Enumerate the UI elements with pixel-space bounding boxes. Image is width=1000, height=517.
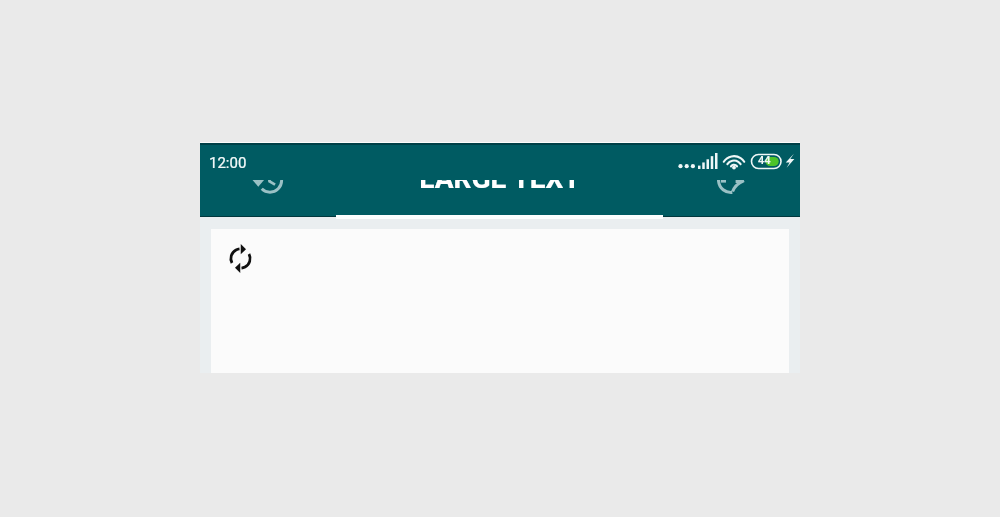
staticText: 44 (758, 154, 771, 167)
button[interactable]: History (251, 180, 286, 198)
staticText: LARGE TEXT (200, 180, 800, 195)
staticText: 12:00 (209, 154, 247, 172)
button[interactable]: Refresh (713, 180, 749, 198)
button[interactable]: Sync (224, 242, 257, 275)
